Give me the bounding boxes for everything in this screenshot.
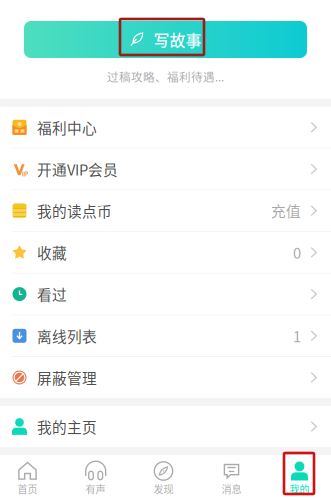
staticText: 充值 — [271, 200, 301, 221]
staticText: 看过 — [37, 283, 67, 305]
staticText: 我的读点币 — [37, 200, 112, 221]
button[interactable]: IP — [0, 148, 331, 190]
staticText: 写故事 — [153, 28, 201, 51]
button[interactable]: 我的主页 — [0, 406, 331, 447]
button[interactable]: 我的读点币 — [0, 190, 331, 232]
button[interactable]: 首页 — [0, 455, 61, 500]
button[interactable]: 福利中心 — [0, 107, 331, 148]
staticText: 过稿攻略、福利待遇... — [107, 68, 224, 85]
staticText: 消息 — [221, 481, 241, 496]
button[interactable]: 写故事 — [24, 21, 307, 58]
button[interactable]: 看过 — [0, 274, 331, 315]
button[interactable]: 消息 — [197, 455, 265, 500]
staticText: 发现 — [153, 481, 173, 496]
staticText: 我的主页 — [37, 416, 97, 437]
button[interactable]: 我的 — [265, 455, 331, 500]
button[interactable]: 发现 — [129, 455, 197, 500]
staticText: 收藏 — [37, 242, 67, 263]
staticText: 离线列表 — [37, 325, 97, 346]
staticText: 我的 — [289, 481, 309, 496]
button[interactable]: 有声 — [61, 455, 129, 500]
button[interactable]: 离线列表 — [0, 315, 331, 357]
staticText: 0 — [293, 242, 301, 263]
staticText: 1 — [293, 325, 301, 346]
staticText: 首页 — [17, 481, 37, 496]
staticText: IP — [22, 170, 28, 178]
button[interactable]: 屏蔽管理 — [0, 357, 331, 398]
button[interactable]: 收藏 — [0, 232, 331, 274]
staticText: 有声 — [85, 481, 105, 496]
staticText: 屏蔽管理 — [37, 367, 97, 388]
staticText: 福利中心 — [37, 117, 97, 138]
staticText: 开通VIP会员 — [37, 158, 118, 180]
